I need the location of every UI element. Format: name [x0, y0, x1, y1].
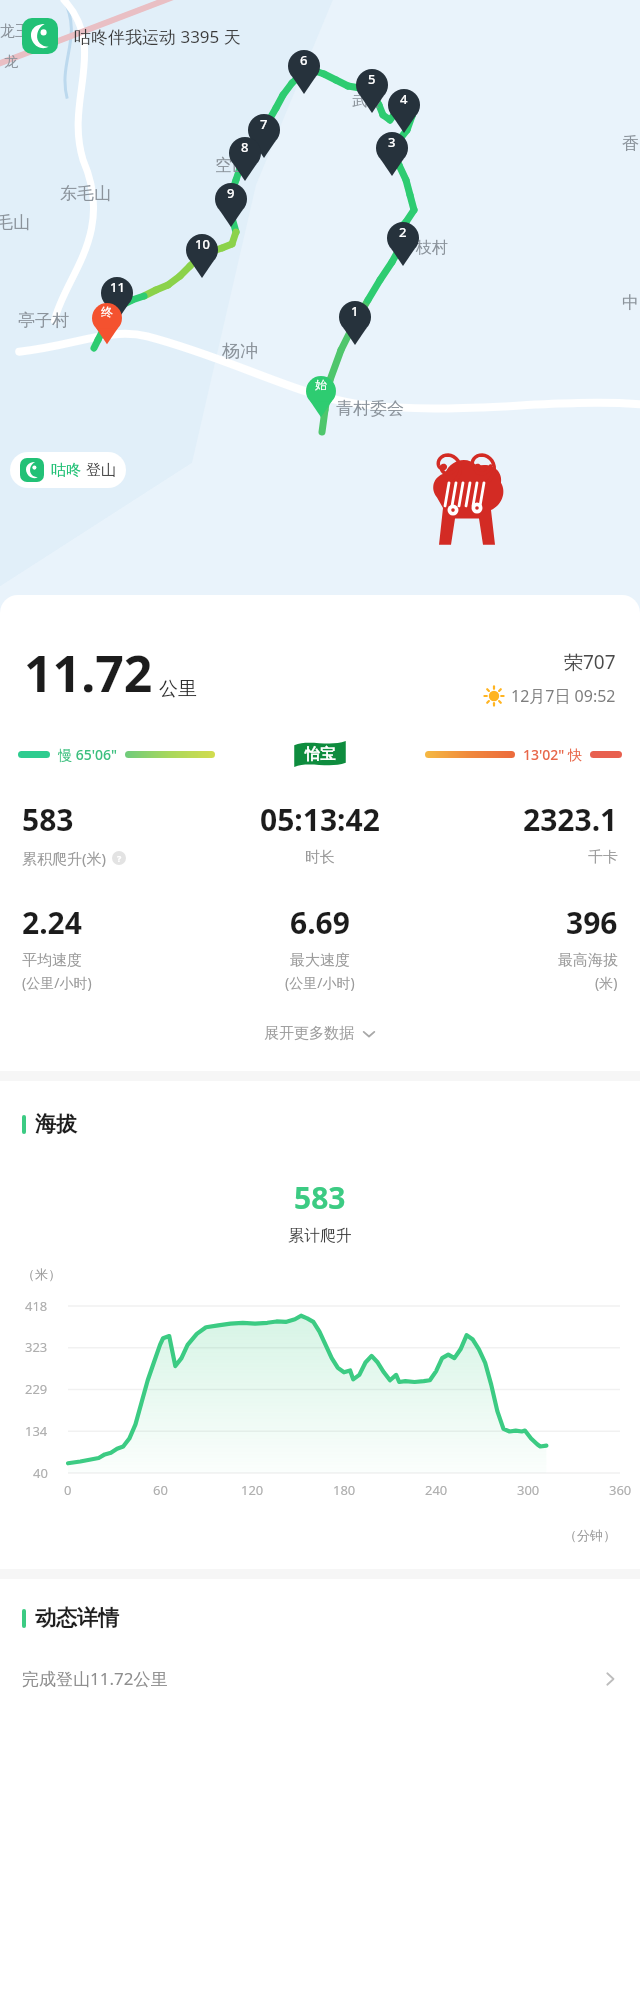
staticText: 中 [622, 292, 639, 313]
staticText: 583 [294, 1177, 346, 1218]
staticText: 亭子村 [18, 310, 69, 331]
staticText: 毛山 [0, 212, 30, 233]
staticText: 396 [566, 902, 618, 943]
staticText: 累积爬升(米) [22, 848, 107, 868]
staticText: 7 [260, 115, 268, 133]
staticText: 3 [388, 133, 396, 151]
staticText: 龙王 [0, 22, 30, 41]
staticText: 枝村 [416, 238, 448, 258]
staticText: 2323.1 [523, 799, 618, 840]
staticText: 平均速度 [22, 951, 82, 970]
staticText: 龙 [4, 53, 18, 71]
staticText: 323 [25, 1338, 48, 1356]
staticText: 登山 [86, 461, 116, 480]
staticText: 9 [227, 184, 235, 202]
staticText: 杨冲 [222, 340, 258, 363]
staticText: 300 [517, 1481, 540, 1499]
staticText: 公里 [159, 677, 197, 701]
staticText: 空山 [215, 155, 249, 176]
staticText: 134 [25, 1422, 48, 1440]
staticText: 累计爬升 [288, 1226, 352, 1246]
staticText: 2.24 [22, 902, 82, 943]
staticText: 12月7日 09:52 [511, 685, 616, 707]
staticText: 千卡 [588, 848, 618, 867]
staticText: 5 [368, 70, 376, 88]
staticText: 05:13:42 [260, 799, 380, 840]
staticText: 418 [25, 1297, 48, 1315]
staticText: 6 [300, 51, 308, 69]
staticText: （分钟） [564, 1527, 616, 1543]
staticText: 60 [153, 1481, 168, 1499]
staticText: 动态详情 [35, 1605, 119, 1631]
staticText: 1 [351, 302, 359, 320]
staticText: 咕咚伴我运动 3395 天 [74, 25, 241, 48]
staticText: 海拔 [35, 1111, 77, 1137]
staticText: 240 [425, 1481, 448, 1499]
staticText: 展开更多数据 [264, 1024, 354, 1043]
staticText: 武岭 [352, 92, 382, 111]
staticText: 怡宝 [305, 745, 335, 764]
staticText: 最高海拔 [558, 951, 618, 970]
staticText: 东毛山 [60, 183, 111, 204]
staticText: 青村委会 [336, 398, 404, 419]
staticText: （米） [22, 1266, 61, 1282]
staticText: 慢 65'06" [58, 745, 117, 764]
staticText: (公里/小时) [285, 973, 355, 992]
button[interactable]: 怡宝 [292, 737, 348, 771]
staticText: 40 [33, 1464, 48, 1482]
staticText: 香 [622, 133, 639, 154]
staticText: 荣707 [564, 649, 616, 675]
staticText: 583 [22, 799, 74, 840]
button[interactable]: 咕咚 [10, 452, 126, 488]
staticText: 229 [25, 1380, 48, 1398]
staticText: 120 [241, 1481, 264, 1499]
staticText: 2 [399, 223, 407, 241]
staticText: 8 [241, 138, 249, 156]
staticText: 11 [110, 278, 125, 296]
staticText: 180 [333, 1481, 356, 1499]
staticText: 终 [101, 304, 113, 319]
button[interactable]: 说明 [112, 851, 126, 865]
button[interactable]: 展开更多数据 [0, 1018, 640, 1049]
staticText: 始 [315, 377, 327, 392]
staticText: 11.72 [24, 639, 153, 707]
staticText: 完成登山11.72公里 [22, 1667, 168, 1690]
staticText: 10 [195, 235, 210, 253]
staticText: 时长 [305, 848, 335, 867]
staticText: 4 [400, 90, 408, 108]
staticText: (公里/小时) [22, 973, 92, 992]
staticText: 0 [64, 1481, 72, 1499]
staticText: (米) [595, 973, 618, 992]
staticText: 13'02" 快 [523, 745, 582, 764]
staticText: 360 [609, 1481, 632, 1499]
staticText: 最大速度 [290, 951, 350, 970]
staticText: 咕咚 [51, 461, 81, 480]
staticText: 6.69 [290, 902, 350, 943]
staticText: ? [117, 852, 122, 864]
button[interactable]: 完成登山11.72公里 [0, 1657, 640, 1700]
